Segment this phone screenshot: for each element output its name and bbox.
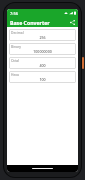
button[interactable]: Share: [68, 18, 77, 27]
staticText: Hexa: [11, 72, 19, 76]
button[interactable]: Hexa: [9, 71, 76, 83]
button[interactable]: Binary: [9, 43, 76, 55]
staticText: Binary: [11, 44, 21, 48]
staticText: Decimal: [11, 30, 24, 34]
staticText: 400: [39, 63, 46, 68]
staticText: 100000000: [33, 49, 52, 54]
staticText: Base Converter: [10, 19, 50, 26]
staticText: Octal: [11, 58, 20, 62]
staticText: 7:56: [10, 11, 18, 16]
button[interactable]: Decimal: [9, 29, 76, 41]
staticText: 100: [39, 77, 46, 82]
button[interactable]: Octal: [9, 57, 76, 69]
staticText: 256: [39, 35, 46, 40]
